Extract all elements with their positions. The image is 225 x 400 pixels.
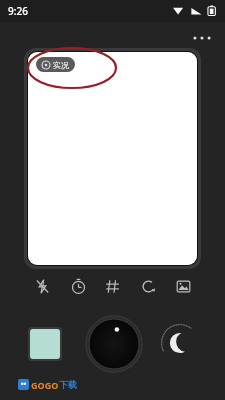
button[interactable]: 实况 xyxy=(36,57,75,72)
staticText: 下载 xyxy=(59,379,77,390)
staticText: 实况 xyxy=(53,60,69,70)
button[interactable]: Switch camera xyxy=(136,274,160,298)
staticText: GOGO xyxy=(31,379,59,391)
button[interactable]: Timer xyxy=(66,274,90,298)
button[interactable]: Grid xyxy=(100,274,124,298)
button[interactable]: Gallery xyxy=(30,329,60,359)
button[interactable]: Shutter xyxy=(85,315,143,373)
button[interactable]: Flash off xyxy=(30,274,54,298)
button[interactable]: Filters xyxy=(171,274,195,298)
button[interactable]: Night mode xyxy=(157,320,203,366)
button[interactable]: More options xyxy=(186,28,218,48)
staticText: 9:26 xyxy=(8,4,28,18)
